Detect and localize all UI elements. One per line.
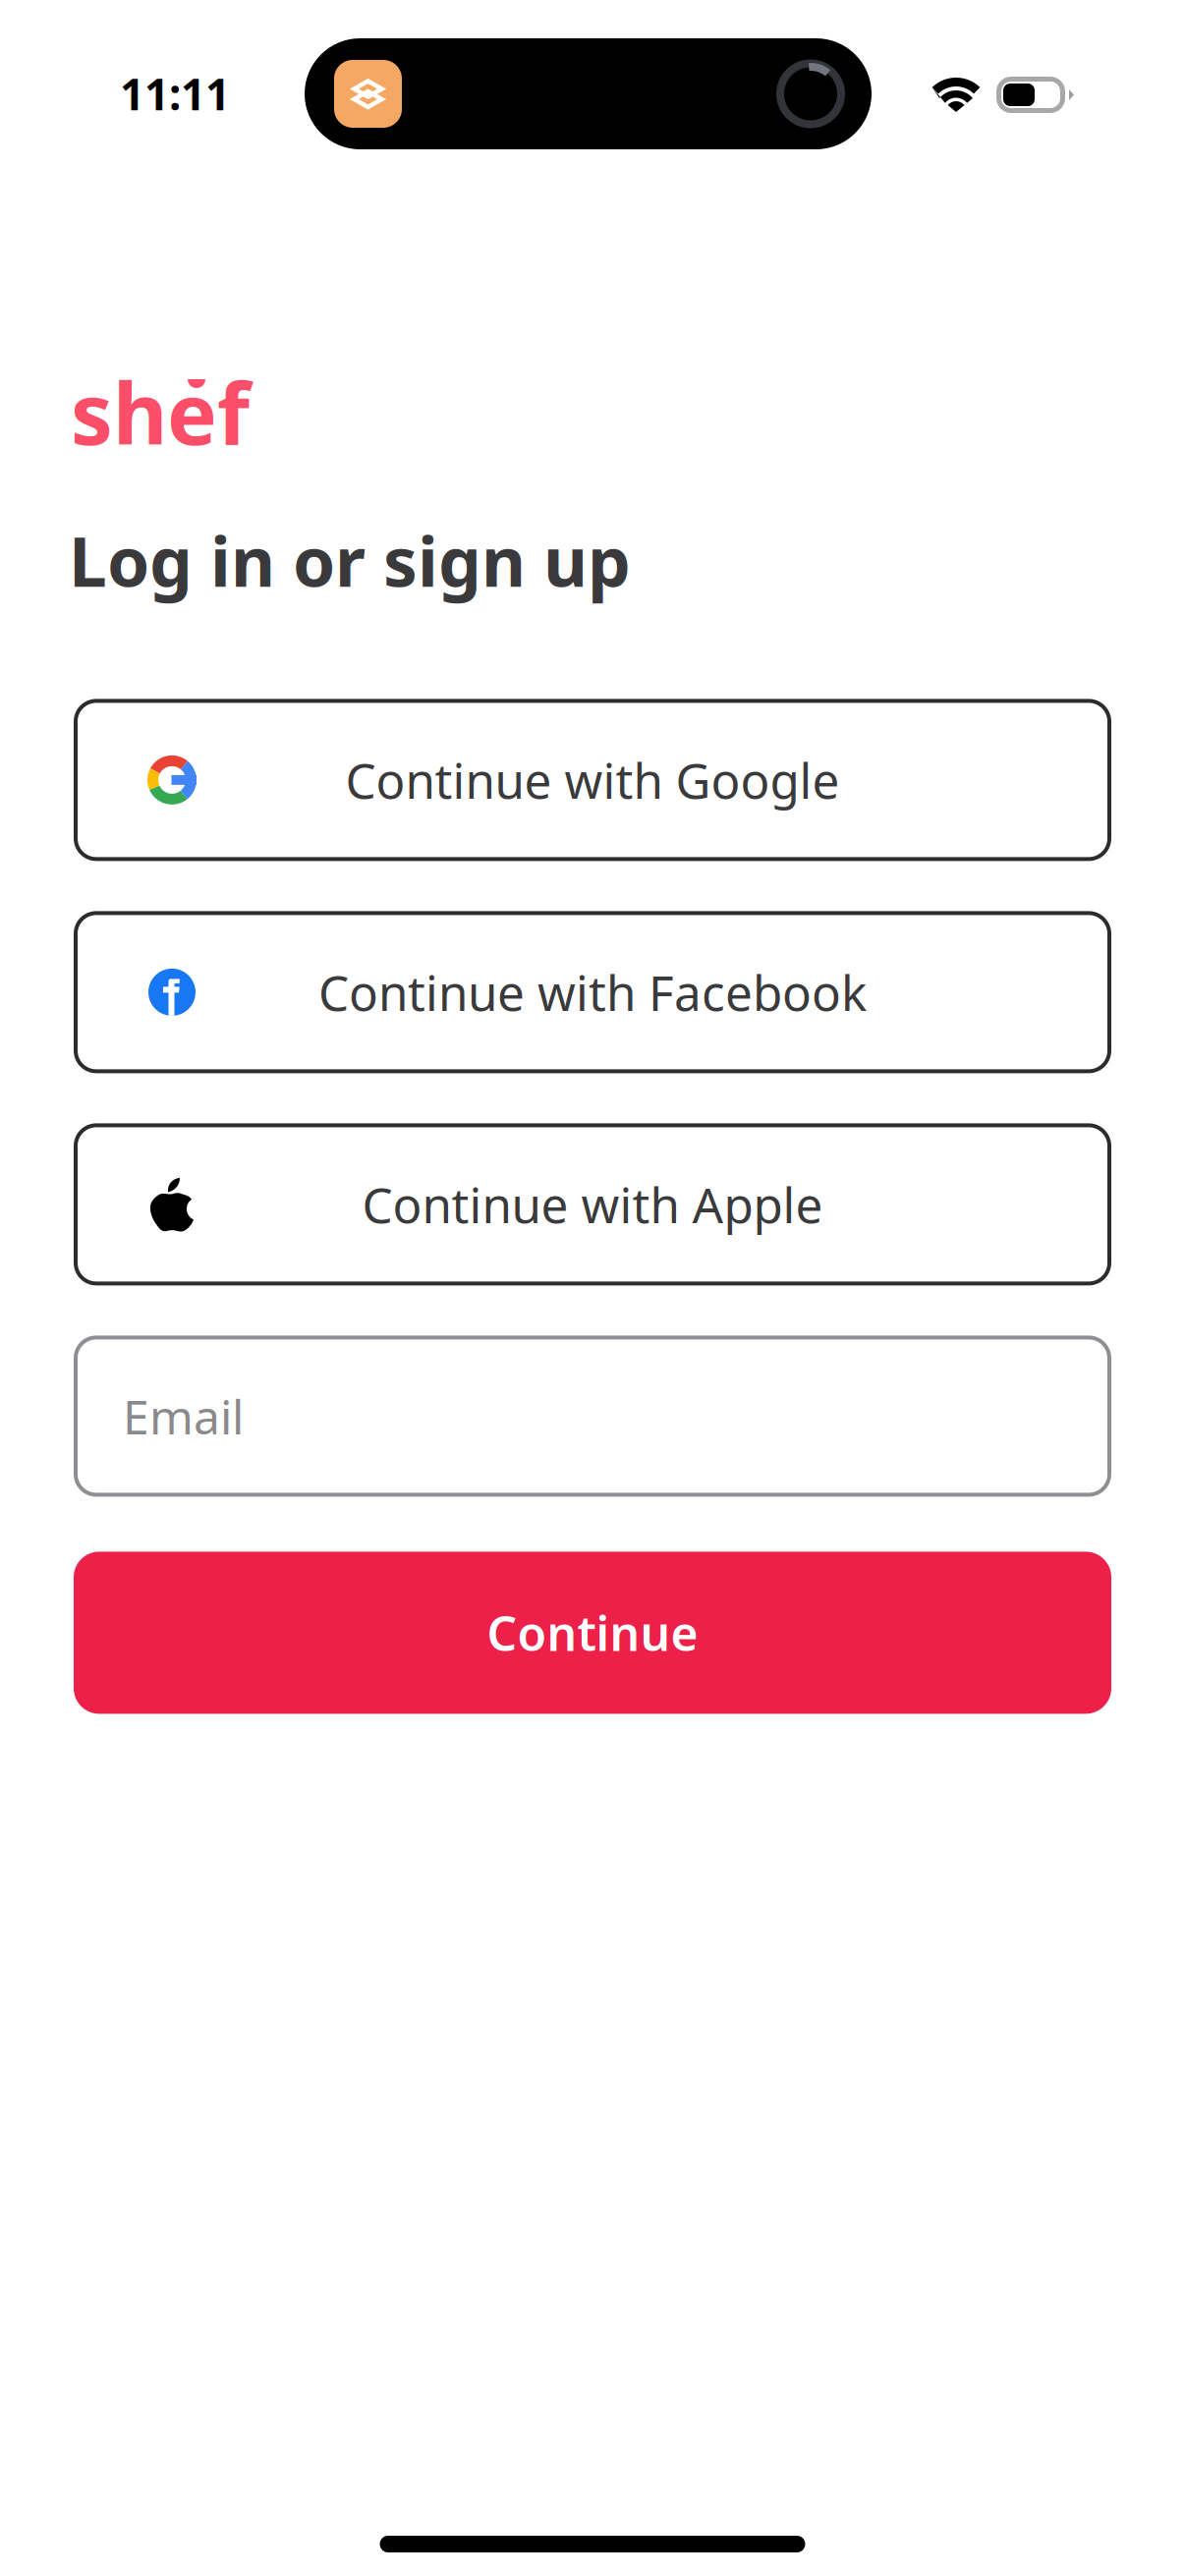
button[interactable]: Continue <box>74 1552 1111 1714</box>
staticText: 11:11 <box>120 65 230 122</box>
staticText: Email <box>123 1385 244 1447</box>
staticText: Log in or sign up <box>69 515 631 606</box>
staticText: shef <box>71 357 250 468</box>
button[interactable]: Continue with Apple <box>74 1123 1111 1285</box>
staticText: Continue with Google <box>345 748 840 812</box>
staticText: Continue <box>487 1601 698 1664</box>
button[interactable]: Continue with Google <box>74 699 1111 861</box>
staticText: Continue with Facebook <box>318 960 867 1024</box>
staticText: Continue with Apple <box>362 1172 823 1237</box>
button[interactable]: Continue with Facebook <box>74 911 1111 1073</box>
button[interactable]: Email <box>74 1336 1111 1497</box>
